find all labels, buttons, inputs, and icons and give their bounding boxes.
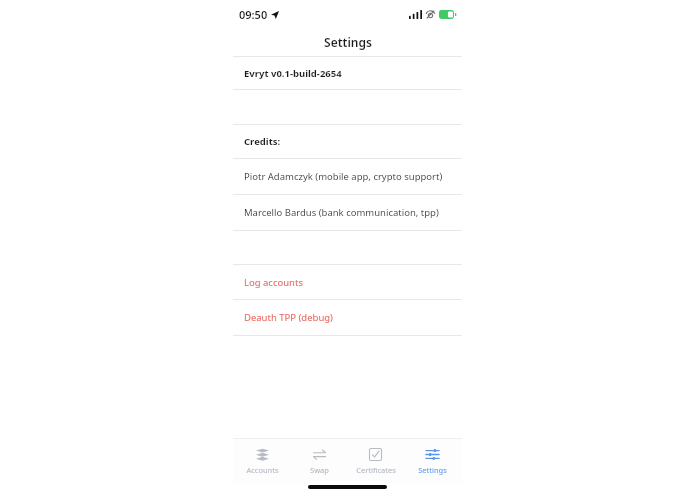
staticText: Settings (324, 34, 372, 50)
staticText: Evryt v0.1-build-2654 (244, 67, 342, 80)
button[interactable]: Settings (405, 444, 460, 478)
staticText: Settings (418, 465, 447, 475)
button[interactable]: Accounts (235, 444, 290, 478)
button[interactable]: Credits: (233, 125, 462, 158)
staticText: Accounts (246, 465, 279, 475)
staticText: Certificates (356, 465, 396, 475)
button[interactable]: Piotr Adamczyk (mobile app, crypto suppo… (233, 159, 462, 194)
staticText: Swap (310, 465, 329, 475)
button[interactable]: Marcello Bardus (bank communication, tpp… (233, 195, 462, 230)
button[interactable]: Deauth TPP (debug) (233, 300, 462, 335)
staticText: Piotr Adamczyk (mobile app, crypto suppo… (244, 170, 443, 183)
staticText: Log accounts (244, 276, 303, 289)
staticText: 09:50 (239, 7, 268, 22)
button[interactable]: Swap (292, 444, 347, 478)
button[interactable]: Evryt v0.1-build-2654 (233, 57, 462, 89)
staticText: Credits: (244, 135, 281, 148)
staticText: Marcello Bardus (bank communication, tpp… (244, 206, 439, 219)
button[interactable]: Log accounts (233, 265, 462, 299)
button[interactable]: Certificates (348, 444, 403, 478)
staticText: Deauth TPP (debug) (244, 311, 333, 324)
